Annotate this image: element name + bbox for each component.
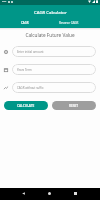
staticText: Enter initial amount [17, 50, 44, 54]
staticText: RESET [69, 104, 79, 108]
staticText: CAGR Calculator [34, 9, 67, 15]
button[interactable]: Enter initial amount [12, 46, 96, 57]
staticText: Calculate Future Value [0, 32, 100, 38]
button[interactable]: Recent apps [66, 188, 85, 200]
staticText: CAGR [21, 21, 29, 25]
button[interactable]: Reverse CAGR [50, 18, 87, 28]
staticText: CAGR without suffix [17, 86, 44, 90]
button[interactable]: CAGR without suffix [12, 82, 96, 93]
button[interactable]: Years Term [12, 64, 96, 75]
staticText: CALCULATE [17, 104, 35, 108]
button[interactable]: Home [40, 188, 59, 200]
staticText: Reverse CAGR [59, 21, 79, 25]
staticText: 4:02 [2, 0, 7, 3]
staticText: Years Term [17, 68, 32, 72]
button[interactable]: Back [14, 188, 33, 200]
button[interactable]: CALCULATE [4, 101, 48, 110]
button[interactable]: CAGR [0, 18, 50, 28]
button[interactable]: RESET [52, 101, 96, 110]
